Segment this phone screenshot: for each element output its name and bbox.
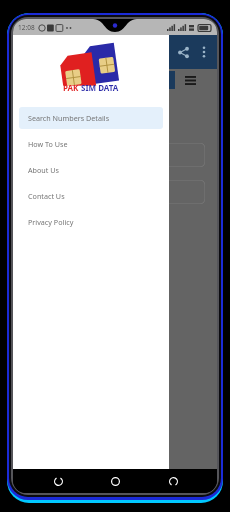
button[interactable]: Privacy Policy xyxy=(19,211,163,233)
button[interactable]: Contact Us xyxy=(19,185,163,207)
button[interactable]: More options xyxy=(194,42,214,62)
staticText: SIM DATA xyxy=(81,82,119,93)
button[interactable] xyxy=(43,143,205,167)
button[interactable]: Back xyxy=(160,469,186,493)
staticText: About Us xyxy=(28,165,59,175)
button[interactable] xyxy=(43,180,205,204)
button[interactable]: Search Numbers Details xyxy=(19,107,163,129)
button[interactable]: Recent apps xyxy=(45,469,71,493)
staticText: Search Numbers Details xyxy=(28,113,110,123)
staticText: 12:08 xyxy=(18,23,35,32)
staticText: Privacy Policy xyxy=(28,217,74,227)
staticText: How To Use xyxy=(28,139,68,149)
staticText: Contact Us xyxy=(28,191,65,201)
button[interactable]: About Us xyxy=(19,159,163,181)
button[interactable]: How To Use xyxy=(19,133,163,155)
staticText: PAK xyxy=(63,82,79,93)
button[interactable]: Home xyxy=(102,469,128,493)
button[interactable]: Share xyxy=(172,41,194,63)
button[interactable]: List xyxy=(181,71,199,89)
